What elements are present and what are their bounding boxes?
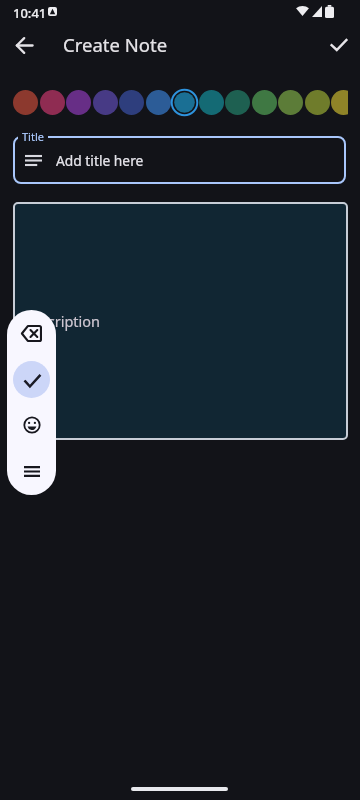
button[interactable] <box>7 310 56 356</box>
button[interactable]: Add title here <box>13 136 346 184</box>
staticText: Title <box>22 129 44 144</box>
button[interactable] <box>252 90 277 115</box>
button[interactable] <box>7 402 56 448</box>
button[interactable] <box>4 25 44 65</box>
button[interactable] <box>13 90 38 115</box>
button[interactable] <box>40 90 65 115</box>
button[interactable] <box>278 90 303 115</box>
button[interactable] <box>146 90 171 115</box>
button[interactable] <box>305 90 330 115</box>
staticText: Description <box>22 311 101 331</box>
button[interactable] <box>172 90 197 115</box>
button[interactable] <box>119 90 144 115</box>
button[interactable] <box>331 90 348 115</box>
button[interactable]: Description <box>13 202 348 440</box>
button[interactable] <box>66 90 91 115</box>
button[interactable] <box>225 90 250 115</box>
staticText: Add title here <box>56 151 144 170</box>
button[interactable] <box>319 25 359 65</box>
staticText: 10:41 <box>13 4 47 22</box>
button[interactable] <box>199 90 224 115</box>
button[interactable] <box>7 356 56 402</box>
staticText: Create Note <box>63 32 168 57</box>
button[interactable] <box>93 90 118 115</box>
button[interactable] <box>7 448 56 494</box>
